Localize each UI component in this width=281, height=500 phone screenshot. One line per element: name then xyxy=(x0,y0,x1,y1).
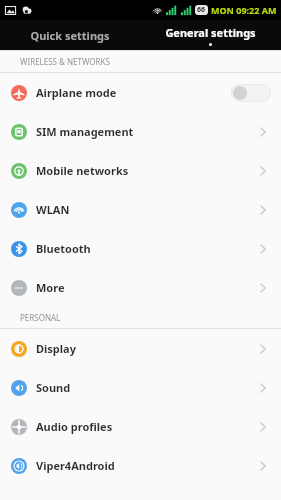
button[interactable]: Mobile networks xyxy=(0,151,281,190)
button[interactable]: WLAN xyxy=(0,190,281,229)
staticText: SIM management xyxy=(36,124,134,139)
button[interactable]: Viper4Android xyxy=(0,446,281,485)
button[interactable]: Quick settings xyxy=(0,20,140,50)
staticText: Mobile networks xyxy=(36,163,129,178)
staticText: MON 09:22 AM xyxy=(211,4,277,16)
button[interactable]: Sound xyxy=(0,368,281,407)
button[interactable]: Display xyxy=(0,329,281,368)
staticText: Viper4Android xyxy=(36,458,115,473)
button[interactable]: Airplane mode toggle xyxy=(231,84,271,102)
staticText: Airplane mode xyxy=(36,85,117,100)
button[interactable]: Airplane mode xyxy=(0,73,281,112)
staticText: WLAN xyxy=(36,202,70,217)
button[interactable]: Audio profiles xyxy=(0,407,281,446)
button[interactable]: Bluetooth xyxy=(0,229,281,268)
staticText: More xyxy=(36,280,65,295)
staticText: General settings xyxy=(165,25,256,40)
staticText: Bluetooth xyxy=(36,241,91,256)
staticText: Display xyxy=(36,341,76,356)
staticText: PERSONAL xyxy=(20,312,61,323)
staticText: Quick settings xyxy=(30,28,110,43)
staticText: Audio profiles xyxy=(36,419,113,434)
staticText: WIRELESS & NETWORKS xyxy=(20,56,110,67)
staticText: 66 xyxy=(197,5,206,15)
button[interactable]: General settings xyxy=(140,20,281,50)
button[interactable]: More xyxy=(0,268,281,307)
button[interactable]: SIM management xyxy=(0,112,281,151)
staticText: Sound xyxy=(36,380,71,395)
